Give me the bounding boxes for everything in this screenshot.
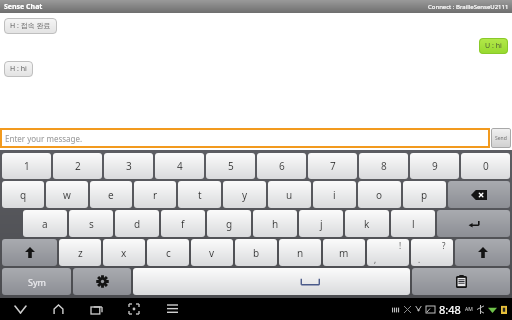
button[interactable]: Shift [2,239,57,266]
button[interactable]: ? [411,239,453,266]
staticText: a [42,217,48,231]
staticText: ! [399,240,402,251]
staticText: , [374,254,377,265]
button[interactable]: j [299,210,343,237]
button[interactable]: s [69,210,113,237]
staticText: 3 [126,159,132,173]
button[interactable]: 8 [359,153,408,179]
button[interactable]: h [253,210,297,237]
staticText: m [339,246,349,260]
button[interactable]: Clipboard [412,268,510,295]
button[interactable]: Screenshot [124,299,144,319]
button[interactable]: p [403,181,446,208]
button[interactable]: w [46,181,88,208]
button[interactable]: 2 [53,153,102,179]
staticText: H : hi [10,64,27,74]
button[interactable]: Home [48,299,68,319]
button[interactable]: Sym [2,268,71,295]
staticText: . [418,254,421,265]
button[interactable]: i [313,181,356,208]
button[interactable] [133,268,410,295]
staticText: y [242,188,248,202]
staticText: ? [442,240,446,251]
staticText: 1 [24,159,30,173]
button[interactable]: r [134,181,176,208]
staticText: U : hi [485,41,502,51]
button[interactable]: 9 [410,153,459,179]
button[interactable]: 3 [104,153,153,179]
button[interactable]: 1 [2,153,51,179]
button[interactable]: q [2,181,44,208]
button[interactable]: o [358,181,401,208]
staticText: p [421,188,428,202]
staticText: u [286,188,293,202]
staticText: j [320,217,323,231]
button[interactable]: U : hi [479,38,508,54]
button[interactable]: v [191,239,233,266]
staticText: H : 접속 완료 [10,21,51,31]
button[interactable]: ! [367,239,409,266]
staticText: l [412,217,415,231]
button[interactable]: 4 [155,153,204,179]
button[interactable]: z [59,239,101,266]
staticText: d [134,217,141,231]
button[interactable]: 0 [461,153,510,179]
button[interactable]: Send [491,128,511,148]
button[interactable]: a [23,210,67,237]
button[interactable]: Back [10,299,30,319]
button[interactable]: Backspace [448,181,510,208]
staticText: Sym [28,276,46,288]
button[interactable]: Keyboard settings [73,268,131,295]
staticText: w [63,188,71,202]
button[interactable]: Shift [455,239,510,266]
staticText: 7 [330,159,336,173]
button[interactable]: m [323,239,365,266]
button[interactable]: Enter [437,210,510,237]
button[interactable]: Recents [86,299,106,319]
button[interactable]: x [103,239,145,266]
button[interactable]: c [147,239,189,266]
button[interactable]: 7 [308,153,357,179]
staticText: z [78,246,83,260]
staticText: AM [465,306,473,313]
staticText: c [166,246,171,260]
staticText: 4 [177,159,183,173]
staticText: 6 [279,159,285,173]
button[interactable]: t [178,181,221,208]
button[interactable]: H : 접속 완료 [4,18,57,34]
staticText: b [253,246,260,260]
button[interactable]: d [115,210,159,237]
button[interactable]: l [391,210,435,237]
button[interactable]: 5 [206,153,255,179]
staticText: 8:48 [439,302,461,317]
staticText: 8 [381,159,387,173]
button[interactable]: e [90,181,132,208]
staticText: 9 [432,159,438,173]
staticText: Sense Chat [4,2,43,12]
button[interactable]: y [223,181,266,208]
button[interactable]: u [268,181,311,208]
staticText: Enter your message. [5,133,83,144]
staticText: q [20,188,27,202]
staticText: v [209,246,215,260]
button[interactable]: 6 [257,153,306,179]
button[interactable]: k [345,210,389,237]
staticText: t [198,188,202,202]
staticText: h [272,217,279,231]
button[interactable]: f [161,210,205,237]
staticText: o [376,188,383,202]
staticText: k [364,217,370,231]
button[interactable]: b [235,239,277,266]
button[interactable]: g [207,210,251,237]
staticText: s [89,217,94,231]
button[interactable]: H : hi [4,61,33,77]
staticText: i [333,188,336,202]
staticText: e [108,188,114,202]
staticText: n [297,246,304,260]
staticText: 5 [228,159,234,173]
staticText: 2 [75,159,81,173]
button[interactable]: Menu [162,299,182,319]
staticText: f [181,217,185,231]
button[interactable]: Enter your message. [0,128,490,148]
button[interactable]: n [279,239,321,266]
